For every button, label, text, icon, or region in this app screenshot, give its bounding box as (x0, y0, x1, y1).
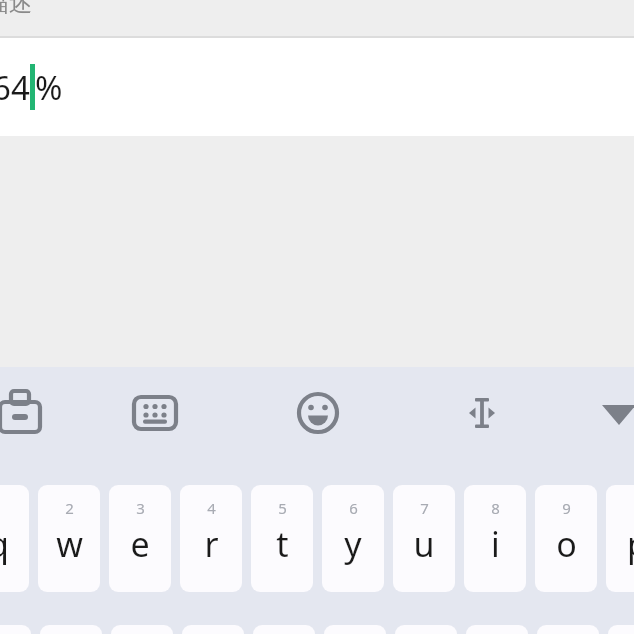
button[interactable]: 0 (606, 485, 634, 592)
staticText: y (344, 521, 362, 567)
staticText: q (0, 521, 9, 567)
button[interactable]: Clipboard (0, 385, 48, 441)
button[interactable] (537, 625, 599, 634)
button[interactable] (395, 625, 457, 634)
button[interactable] (253, 625, 315, 634)
staticText: 描述 (0, 0, 32, 18)
staticText: 8 (491, 498, 500, 518)
staticText: e (130, 521, 150, 567)
button[interactable]: 64 (0, 38, 634, 136)
button[interactable] (466, 625, 528, 634)
staticText: 5 (278, 498, 287, 518)
staticText: 9 (562, 498, 571, 518)
button[interactable]: 3 (109, 485, 171, 592)
button[interactable]: 1 (0, 485, 29, 592)
staticText: 2 (65, 498, 74, 518)
staticText: 4 (207, 498, 216, 518)
button[interactable] (324, 625, 386, 634)
button[interactable]: 7 (393, 485, 455, 592)
button[interactable]: 2 (38, 485, 100, 592)
button[interactable]: Keyboard settings (127, 385, 183, 441)
button[interactable]: 6 (322, 485, 384, 592)
staticText: 3 (136, 498, 145, 518)
staticText: 7 (420, 498, 429, 518)
button[interactable] (608, 625, 634, 634)
button[interactable]: 5 (251, 485, 313, 592)
button[interactable]: 8 (464, 485, 526, 592)
staticText: % (35, 65, 63, 110)
button[interactable]: 4 (180, 485, 242, 592)
staticText: o (556, 521, 577, 567)
staticText: 64 (0, 65, 30, 110)
staticText: 6 (349, 498, 358, 518)
staticText: t (276, 521, 289, 567)
staticText: p (627, 521, 634, 567)
button[interactable] (40, 625, 102, 634)
staticText: u (413, 521, 435, 567)
button[interactable]: 9 (535, 485, 597, 592)
staticText: w (56, 521, 83, 567)
button[interactable]: Move cursor (454, 385, 510, 441)
button[interactable] (0, 625, 31, 634)
staticText: r (204, 521, 219, 567)
button[interactable]: Emoji (290, 385, 346, 441)
button[interactable] (182, 625, 244, 634)
button[interactable] (111, 625, 173, 634)
staticText: i (491, 521, 500, 567)
button[interactable]: Hide keyboard (591, 385, 634, 441)
